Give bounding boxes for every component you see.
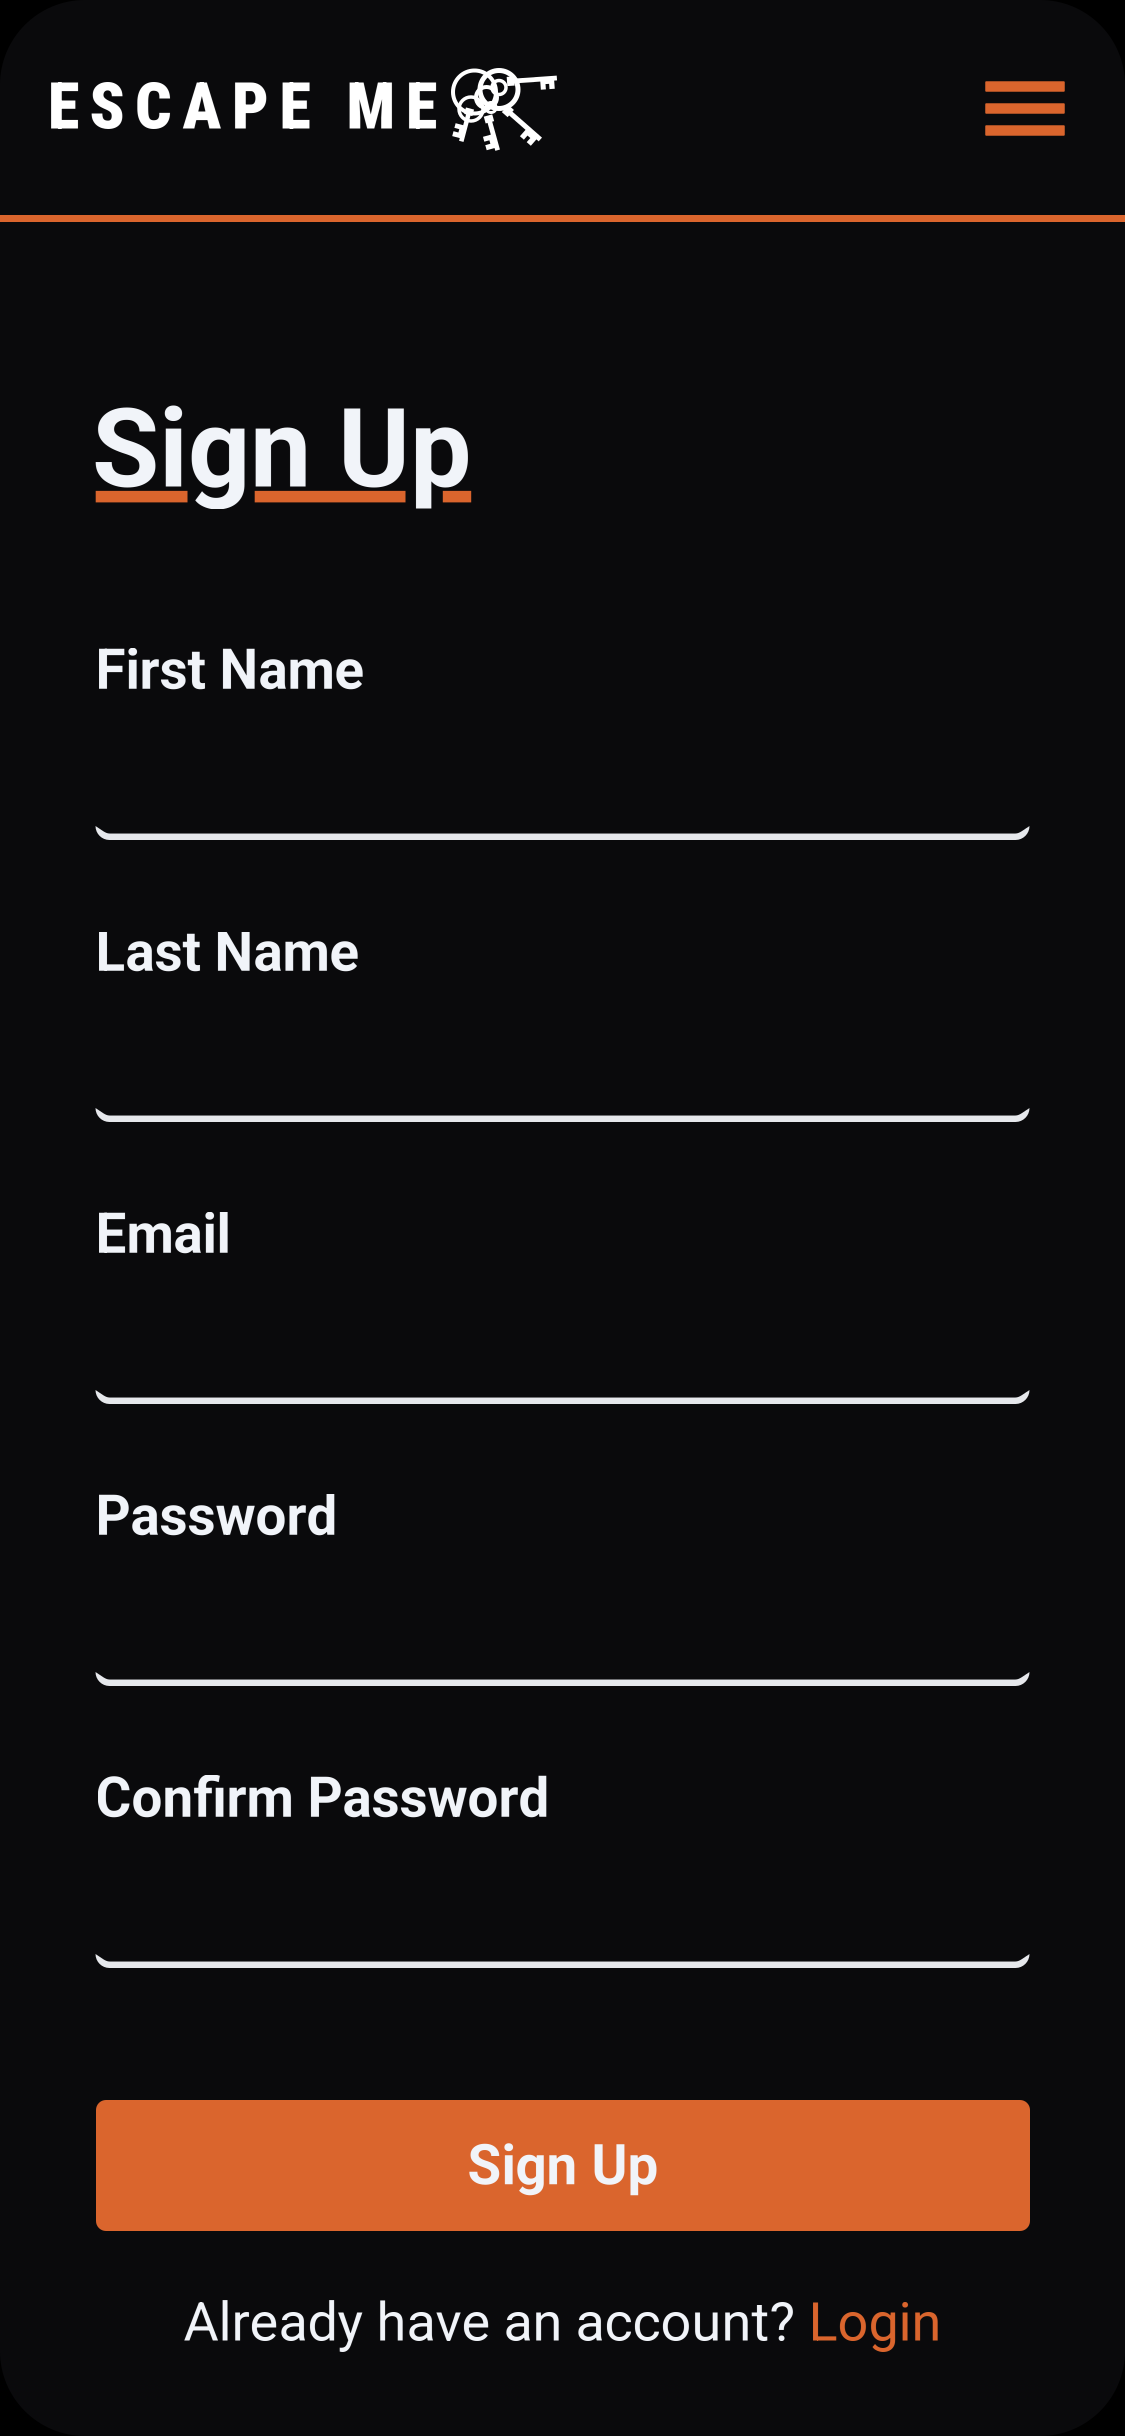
staticText: Last Name <box>95 920 359 984</box>
staticText: Sign Up <box>467 2133 658 2198</box>
staticText: Email <box>95 1202 230 1266</box>
staticText: Login <box>808 2290 941 2354</box>
button[interactable]: Already have an account? <box>0 2272 1125 2372</box>
button[interactable]: Menu <box>955 33 1095 183</box>
staticText: Password <box>95 1484 337 1548</box>
staticText: Confirm Password <box>95 1766 549 1830</box>
button[interactable]: Sign Up <box>96 2100 1030 2231</box>
staticText: Sign Up <box>92 385 472 513</box>
staticText: Already have an account? <box>183 2290 808 2354</box>
button[interactable]: Email <box>95 1271 1029 1404</box>
button[interactable]: Last Name <box>95 989 1029 1122</box>
staticText: First Name <box>95 638 364 702</box>
button[interactable]: First Name <box>95 707 1029 840</box>
staticText: ESCAPE ME <box>48 69 437 144</box>
button[interactable]: Confirm Password <box>95 1835 1029 1968</box>
button[interactable]: Password <box>95 1553 1029 1686</box>
